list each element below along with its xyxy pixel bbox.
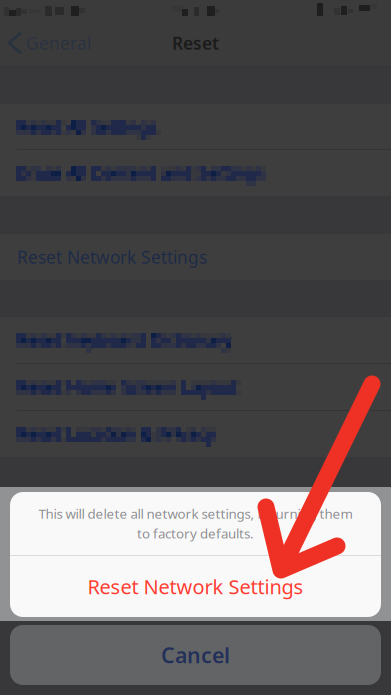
staticText: Reset Home Screen Layout xyxy=(17,376,237,399)
button[interactable]: Erase All Content and Settings xyxy=(0,150,391,196)
button[interactable]: Reset Keyboard Dictionary xyxy=(0,317,391,364)
staticText: to factory defaults. xyxy=(137,524,254,542)
staticText: Erase All Content and Settings xyxy=(17,161,264,184)
button[interactable]: General xyxy=(0,20,120,66)
staticText: Reset All Settings xyxy=(17,115,157,138)
staticText: Reset Network Settings xyxy=(87,573,303,600)
staticText: General xyxy=(26,31,91,54)
button[interactable]: Reset All Settings xyxy=(0,104,391,150)
staticText: Reset Keyboard Dictionary xyxy=(17,329,232,352)
staticText: Reset Location & Privacy xyxy=(17,422,215,445)
button[interactable]: Reset Location & Privacy xyxy=(0,411,391,457)
button[interactable]: Reset Network Settings xyxy=(0,234,391,280)
button[interactable]: Reset Home Screen Layout xyxy=(0,364,391,411)
staticText: Reset Network Settings xyxy=(17,245,207,268)
button[interactable]: Cancel xyxy=(10,625,381,685)
staticText: This will delete all network settings, r… xyxy=(38,505,352,522)
staticText: Cancel xyxy=(161,641,230,669)
staticText: Reset xyxy=(172,31,219,54)
button[interactable]: Reset Network Settings xyxy=(10,556,381,617)
